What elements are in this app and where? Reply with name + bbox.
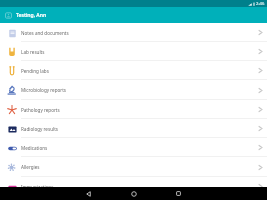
button[interactable]: Allergies (0, 157, 267, 177)
button[interactable]: Pending labs (0, 61, 267, 80)
staticText: Pathology reports (21, 107, 60, 113)
staticText: Lab results (21, 49, 45, 55)
button[interactable]: Notes and documents (0, 23, 267, 42)
button[interactable]: Lab results (0, 42, 267, 61)
button[interactable]: Home (111, 187, 156, 200)
staticText: Pending labs (21, 68, 49, 74)
button[interactable]: Pathology reports (0, 100, 267, 119)
button[interactable]: Radiology results (0, 119, 267, 138)
button[interactable]: Immunizations (0, 177, 267, 196)
staticText: Notes and documents (21, 30, 69, 36)
button[interactable]: Recents (156, 187, 201, 200)
staticText: 2:46 (256, 1, 265, 7)
button[interactable]: Medications (0, 138, 267, 157)
button[interactable]: Back (66, 187, 111, 200)
staticText: Medications (21, 145, 48, 151)
staticText: Testing, Ann (16, 12, 47, 19)
staticText: Radiology results (21, 126, 59, 132)
staticText: Immunizations (21, 184, 54, 190)
button[interactable]: Microbiology reports (0, 80, 267, 100)
staticText: Allergies (21, 164, 40, 170)
button[interactable]: Patient (3, 10, 13, 20)
staticText: Microbiology reports (21, 87, 67, 93)
